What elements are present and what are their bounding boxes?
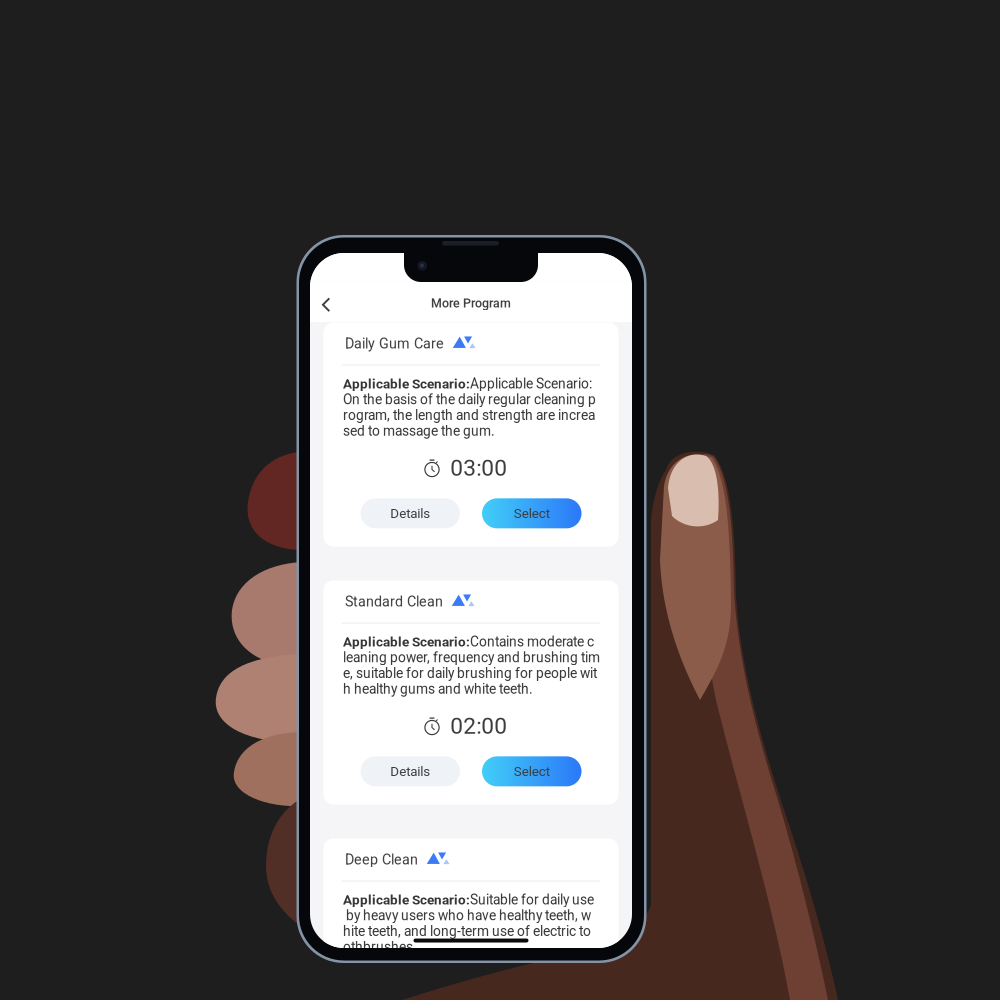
staticText: More Program [431, 296, 511, 310]
staticText: Applicable Scenario:Contains moderate c [343, 634, 594, 650]
staticText: Details [390, 764, 430, 779]
button[interactable]: Details [360, 756, 460, 786]
staticText: othbrushes. [343, 939, 417, 955]
staticText: Details [390, 506, 430, 521]
staticText: hite teeth, and long-term use of electri… [343, 923, 591, 939]
button[interactable]: Select [482, 498, 581, 528]
button[interactable]: Back [314, 288, 338, 322]
staticText: Standard Clean [345, 593, 443, 610]
staticText: 02:00 [450, 713, 507, 739]
staticText: by heavy users who have healthy teeth, w [343, 908, 591, 923]
staticText: Applicable Scenario:Applicable Scenario: [343, 376, 592, 392]
staticText: Select [514, 506, 550, 521]
staticText: h healthy gums and white teeth. [343, 681, 533, 697]
staticText: leaning power, frequency and brushing ti… [343, 650, 600, 665]
staticText: rogram, the length and strength are incr… [343, 407, 595, 423]
staticText: sed to massage the gum. [343, 423, 495, 439]
staticText: e, suitable for daily brushing for peopl… [343, 665, 597, 681]
staticText: Deep Clean [345, 851, 418, 868]
staticText: Select [514, 764, 550, 779]
staticText: On the basis of the daily regular cleani… [343, 392, 596, 407]
button[interactable]: Select [482, 756, 581, 786]
button[interactable]: Details [360, 498, 460, 528]
staticText: 03:00 [450, 455, 507, 481]
staticText: Daily Gum Care [345, 335, 444, 352]
staticText: Applicable Scenario:Suitable for daily u… [343, 892, 594, 908]
